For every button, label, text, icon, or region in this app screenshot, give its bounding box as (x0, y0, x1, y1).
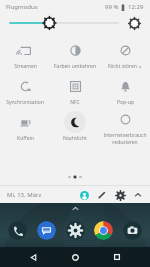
button[interactable]: Kamera (123, 221, 142, 240)
staticText: Flugmodus (6, 3, 38, 11)
staticText: 12:29 (128, 3, 144, 11)
button[interactable]: Zurück (24, 248, 42, 266)
button[interactable]: Bearbeiten (95, 188, 109, 202)
button[interactable]: Startbildschirm (66, 248, 84, 266)
button[interactable]: Übersicht (108, 248, 126, 266)
button[interactable]: Koffein (0, 108, 50, 144)
staticText: Internetverbrauch reduzieren (103, 132, 147, 144)
staticText: Streamen (14, 63, 37, 70)
button[interactable]: Helligkeit (10, 15, 118, 31)
button[interactable]: Internetverbrauch reduzieren (100, 108, 150, 144)
button[interactable]: Synchronisation (0, 72, 50, 108)
staticText: Farben umkehren (54, 63, 96, 70)
button[interactable]: Nachtlicht (50, 108, 100, 144)
staticText: NFC (70, 99, 80, 106)
button[interactable]: Chrome (94, 221, 113, 240)
button[interactable]: Einstellungen (66, 221, 85, 240)
button[interactable]: Automatische Helligkeit (126, 15, 142, 31)
button[interactable]: Nutzer (77, 188, 91, 202)
button[interactable]: Einklappen (131, 188, 145, 202)
button[interactable]: Streamen (0, 36, 50, 72)
button[interactable]: Nachrichten (37, 221, 56, 240)
staticText: Koffein (17, 135, 34, 142)
staticText: Pop-up (117, 99, 134, 106)
staticText: Synchronisation (6, 99, 44, 106)
button[interactable]: Einstellungen (113, 188, 127, 202)
staticText: 99 % (105, 3, 119, 11)
button[interactable]: NFC (50, 72, 100, 108)
staticText: Nachtlicht (63, 135, 87, 142)
staticText: Mi, 13. März (7, 191, 42, 199)
button[interactable]: Farben umkehren (50, 36, 100, 72)
staticText: Nicht stören (108, 63, 137, 70)
button[interactable]: Telefon (8, 221, 27, 240)
button[interactable]: Nicht stören (100, 36, 150, 72)
button[interactable]: Pop-up (100, 72, 150, 108)
